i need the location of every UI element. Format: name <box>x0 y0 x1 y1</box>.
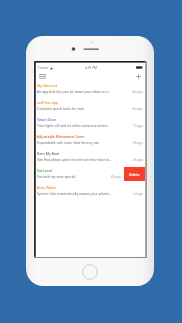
button[interactable]: Adjustable Microwave Cover <box>36 131 145 148</box>
staticText: Carrier <box>38 66 49 70</box>
staticText: My Idea List <box>37 83 58 88</box>
staticText: 9m ago <box>132 107 143 111</box>
staticText: Site that allows users to rent out their… <box>37 157 132 162</box>
staticText: ezzPone app <box>37 100 59 105</box>
staticText: Expandable safe cover that fits any size <box>37 140 132 145</box>
staticText: Rent My Boat <box>37 151 60 156</box>
button[interactable]: ezzPone app <box>36 97 145 114</box>
button[interactable]: Smart Door <box>36 114 145 131</box>
staticText: Adjustable Microwave Cover <box>37 134 85 139</box>
button[interactable]: Eat Local <box>36 165 145 182</box>
button[interactable]: Delete <box>124 167 145 181</box>
button[interactable]: Menu <box>38 72 46 80</box>
staticText: 1h ago <box>133 124 143 128</box>
staticText: 4:35 PM <box>85 66 97 70</box>
button[interactable]: Auto Water <box>36 182 145 199</box>
staticText: Complete quick tasks for cash <box>37 106 131 111</box>
staticText: Eat with my time special <box>37 174 110 179</box>
staticText: 8h ago <box>111 175 121 179</box>
button[interactable]: Add <box>134 72 142 80</box>
staticText: 3h ago <box>133 141 143 145</box>
staticText: Turn lights off and on when someone ente… <box>37 123 132 128</box>
staticText: Delete <box>129 172 140 177</box>
staticText: 5h ago <box>133 158 143 162</box>
button[interactable]: My Idea List <box>36 80 145 97</box>
staticText: 1d ago <box>133 192 143 196</box>
staticText: Eat Local <box>37 168 52 173</box>
staticText: 4m ago <box>132 90 143 94</box>
staticText: System that automatically waters your pl… <box>37 191 132 196</box>
staticText: Auto Water <box>37 185 56 190</box>
staticText: An app that lets you jot down your ideas… <box>37 89 131 94</box>
button[interactable]: Rent My Boat <box>36 148 145 165</box>
staticText: Smart Door <box>37 117 57 122</box>
